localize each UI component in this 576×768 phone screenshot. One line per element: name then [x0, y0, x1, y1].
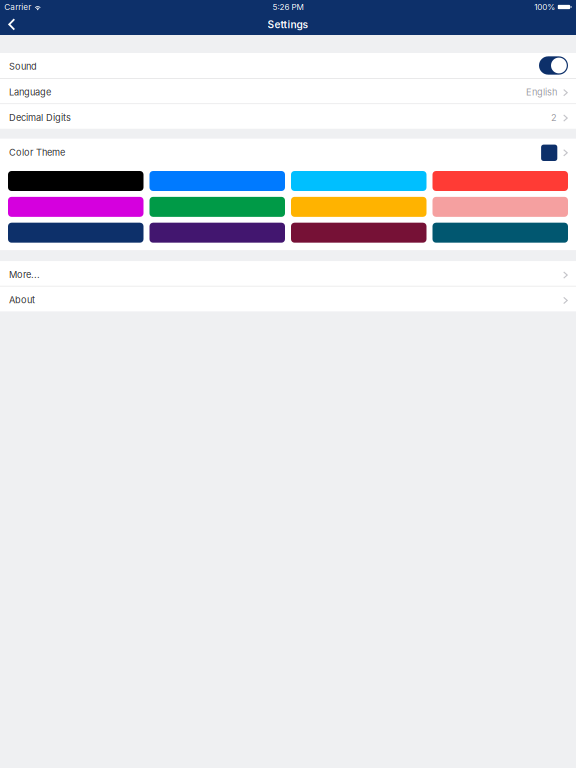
- button[interactable]: Sound: [0, 53, 576, 78]
- button[interactable]: Cyan theme: [291, 171, 426, 191]
- button[interactable]: More...: [0, 261, 576, 286]
- staticText: Decimal Digits: [9, 112, 71, 123]
- staticText: 2: [551, 112, 557, 123]
- button[interactable]: Salmon theme: [432, 197, 568, 217]
- button[interactable]: Green theme: [149, 197, 285, 217]
- button[interactable]: Black theme: [8, 171, 143, 191]
- button[interactable]: Purple theme: [149, 223, 285, 243]
- staticText: About: [9, 294, 35, 305]
- button[interactable]: Red theme: [432, 171, 568, 191]
- button[interactable]: Blue theme: [149, 171, 285, 191]
- staticText: English: [526, 87, 557, 98]
- staticText: More...: [9, 269, 40, 280]
- button[interactable]: Decimal Digits: [0, 104, 576, 129]
- staticText: Color Theme: [9, 147, 65, 158]
- staticText: Carrier: [4, 2, 31, 12]
- button[interactable]: Color Theme: [0, 139, 576, 164]
- button[interactable]: Navy theme: [8, 223, 143, 243]
- button[interactable]: Orange theme: [291, 197, 426, 217]
- button[interactable]: Teal theme: [432, 223, 568, 243]
- staticText: 100%: [534, 2, 555, 12]
- button[interactable]: Magenta theme: [8, 197, 143, 217]
- button[interactable]: Maroon theme: [291, 223, 426, 243]
- staticText: 5:26 PM: [272, 2, 303, 12]
- staticText: Sound: [9, 61, 37, 72]
- button[interactable]: Back: [0, 15, 22, 34]
- button[interactable]: Language: [0, 79, 576, 103]
- staticText: Language: [9, 87, 51, 98]
- staticText: Settings: [267, 18, 308, 31]
- button[interactable]: About: [0, 287, 576, 311]
